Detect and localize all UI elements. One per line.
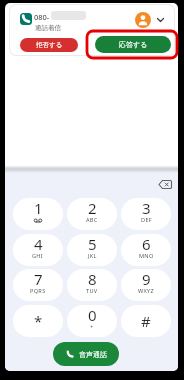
staticText: 1 bbox=[34, 198, 43, 218]
staticText: 応答する bbox=[119, 40, 148, 49]
button[interactable] bbox=[155, 175, 175, 193]
staticText: 5 bbox=[88, 234, 97, 254]
staticText: * bbox=[34, 311, 43, 331]
staticText: 6 bbox=[142, 234, 151, 254]
button[interactable]: 0 bbox=[67, 305, 117, 337]
button[interactable]: 3 bbox=[121, 198, 171, 230]
button[interactable]: 音声通話 bbox=[53, 342, 119, 366]
staticText: 通話着信 bbox=[35, 24, 61, 32]
button[interactable]: 7 bbox=[13, 269, 63, 301]
staticText: # bbox=[141, 311, 151, 331]
staticText: 3 bbox=[142, 198, 151, 218]
staticText: 0 bbox=[88, 305, 97, 325]
staticText: 9 bbox=[142, 269, 151, 289]
staticText: + bbox=[90, 323, 94, 331]
button[interactable]: 拒否する bbox=[20, 38, 78, 52]
staticText: 音声通話 bbox=[79, 350, 107, 359]
button[interactable]: 8 bbox=[67, 269, 117, 301]
button[interactable] bbox=[154, 14, 166, 26]
staticText: 080- bbox=[34, 12, 50, 22]
button[interactable]: 4 bbox=[13, 234, 63, 266]
staticText: JKL bbox=[88, 252, 97, 260]
staticText: 7 bbox=[34, 269, 43, 289]
staticText: ABC bbox=[86, 216, 98, 224]
button[interactable]: 1 bbox=[13, 198, 63, 230]
staticText: PQRS bbox=[30, 287, 46, 295]
button[interactable]: 応答する bbox=[95, 36, 171, 53]
button[interactable]: 5 bbox=[67, 234, 117, 266]
staticText: TUV bbox=[86, 287, 98, 295]
staticText: WXYZ bbox=[138, 287, 155, 295]
staticText: 拒否する bbox=[36, 41, 63, 49]
staticText: 2 bbox=[88, 198, 97, 218]
staticText: GHI bbox=[32, 252, 44, 260]
staticText: MNO bbox=[139, 252, 154, 260]
staticText: 8 bbox=[88, 269, 97, 289]
button[interactable]: 9 bbox=[121, 269, 171, 301]
button[interactable]: 2 bbox=[67, 198, 117, 230]
button[interactable]: 6 bbox=[121, 234, 171, 266]
staticText: 4 bbox=[34, 234, 43, 254]
staticText: DEF bbox=[141, 216, 152, 224]
button[interactable]: * bbox=[13, 305, 63, 337]
button[interactable]: # bbox=[121, 305, 171, 337]
